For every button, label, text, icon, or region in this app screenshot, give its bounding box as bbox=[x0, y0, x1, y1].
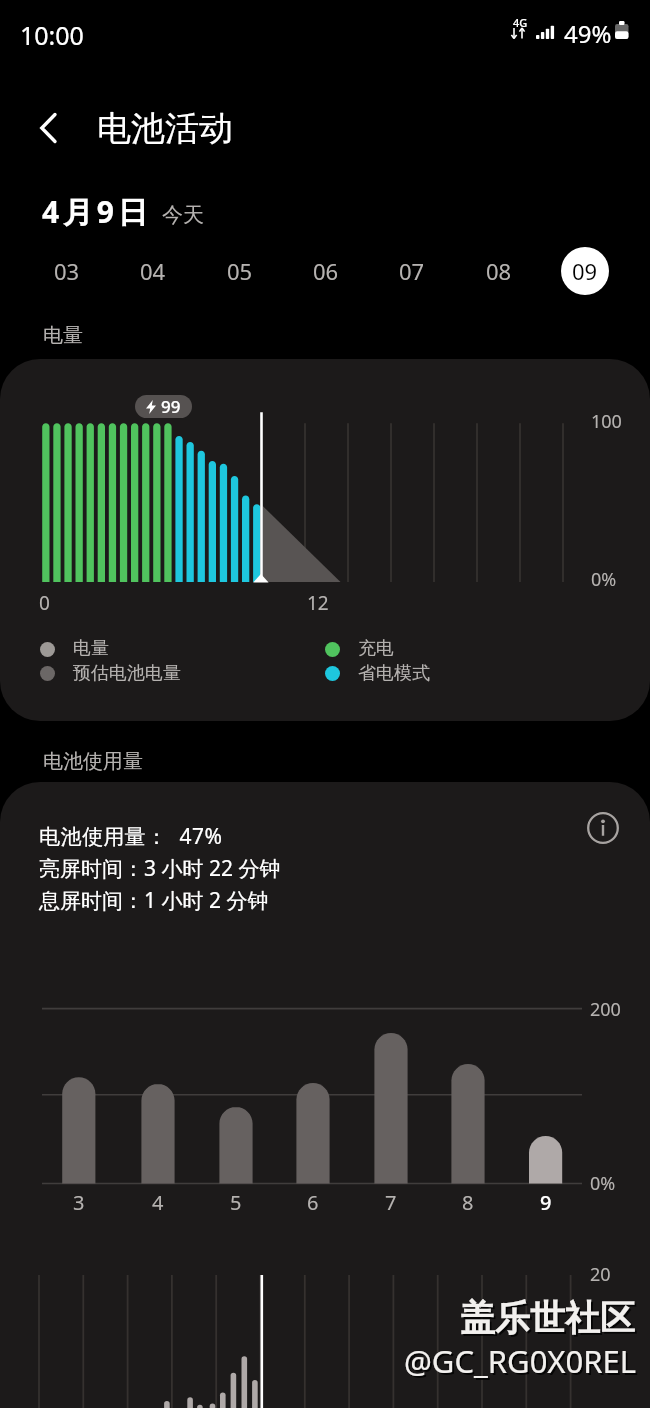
staticText: 08 bbox=[486, 256, 512, 286]
staticText: 7 bbox=[385, 1189, 397, 1216]
staticText: 6 bbox=[307, 1189, 319, 1216]
button[interactable]: Back bbox=[23, 102, 75, 154]
staticText: 0 bbox=[39, 590, 50, 616]
staticText: 电量 bbox=[43, 323, 83, 348]
staticText: 4月9日 bbox=[42, 191, 152, 232]
staticText: 200 bbox=[590, 997, 621, 1022]
button[interactable]: 09 bbox=[561, 247, 609, 295]
staticText: 09 bbox=[572, 256, 598, 286]
staticText: 07 bbox=[399, 256, 425, 286]
staticText: 0% bbox=[590, 1171, 616, 1196]
staticText: 06 bbox=[313, 256, 339, 286]
staticText: 亮屏时间：3 小时 22 分钟 bbox=[39, 854, 281, 883]
staticText: @GC_RG0X0REL bbox=[406, 1342, 639, 1384]
staticText: 3 bbox=[73, 1189, 85, 1216]
button[interactable]: 08 bbox=[475, 247, 523, 295]
staticText: 4 bbox=[152, 1189, 164, 1216]
staticText: 4G bbox=[513, 15, 528, 30]
button[interactable]: 07 bbox=[388, 247, 436, 295]
staticText: 0% bbox=[591, 567, 617, 592]
button[interactable]: 03 bbox=[43, 247, 91, 295]
staticText: 息屏时间：1 小时 2 分钟 bbox=[39, 886, 269, 915]
staticText: 盖乐世社区 bbox=[460, 1296, 635, 1340]
staticText: 电池使用量： 47% bbox=[39, 822, 223, 851]
staticText: 今天 bbox=[162, 202, 204, 228]
staticText: 03 bbox=[54, 256, 80, 286]
staticText: 盖乐世社区 bbox=[462, 1298, 637, 1342]
staticText: 9 bbox=[540, 1189, 552, 1216]
button[interactable]: 05 bbox=[216, 247, 264, 295]
staticText: 电量 bbox=[73, 637, 109, 660]
staticText: 05 bbox=[227, 256, 253, 286]
staticText: 5 bbox=[230, 1189, 242, 1216]
staticText: @GC_RG0X0REL bbox=[404, 1340, 637, 1382]
staticText: 10:00 bbox=[20, 18, 84, 52]
staticText: 99 bbox=[161, 395, 181, 418]
staticText: 预估电池电量 bbox=[73, 662, 181, 685]
button[interactable]: 04 bbox=[129, 247, 177, 295]
staticText: 20 bbox=[590, 1262, 611, 1287]
button[interactable]: 06 bbox=[302, 247, 350, 295]
staticText: 电池活动 bbox=[97, 107, 233, 150]
staticText: 49% bbox=[564, 17, 612, 50]
staticText: 电池使用量 bbox=[43, 749, 143, 774]
staticText: 12 bbox=[307, 590, 329, 616]
staticText: 充电 bbox=[358, 637, 394, 660]
staticText: 省电模式 bbox=[358, 662, 430, 685]
staticText: 100 bbox=[591, 409, 622, 434]
button[interactable]: Info bbox=[580, 805, 626, 851]
staticText: 8 bbox=[462, 1189, 474, 1216]
staticText: 04 bbox=[140, 256, 166, 286]
